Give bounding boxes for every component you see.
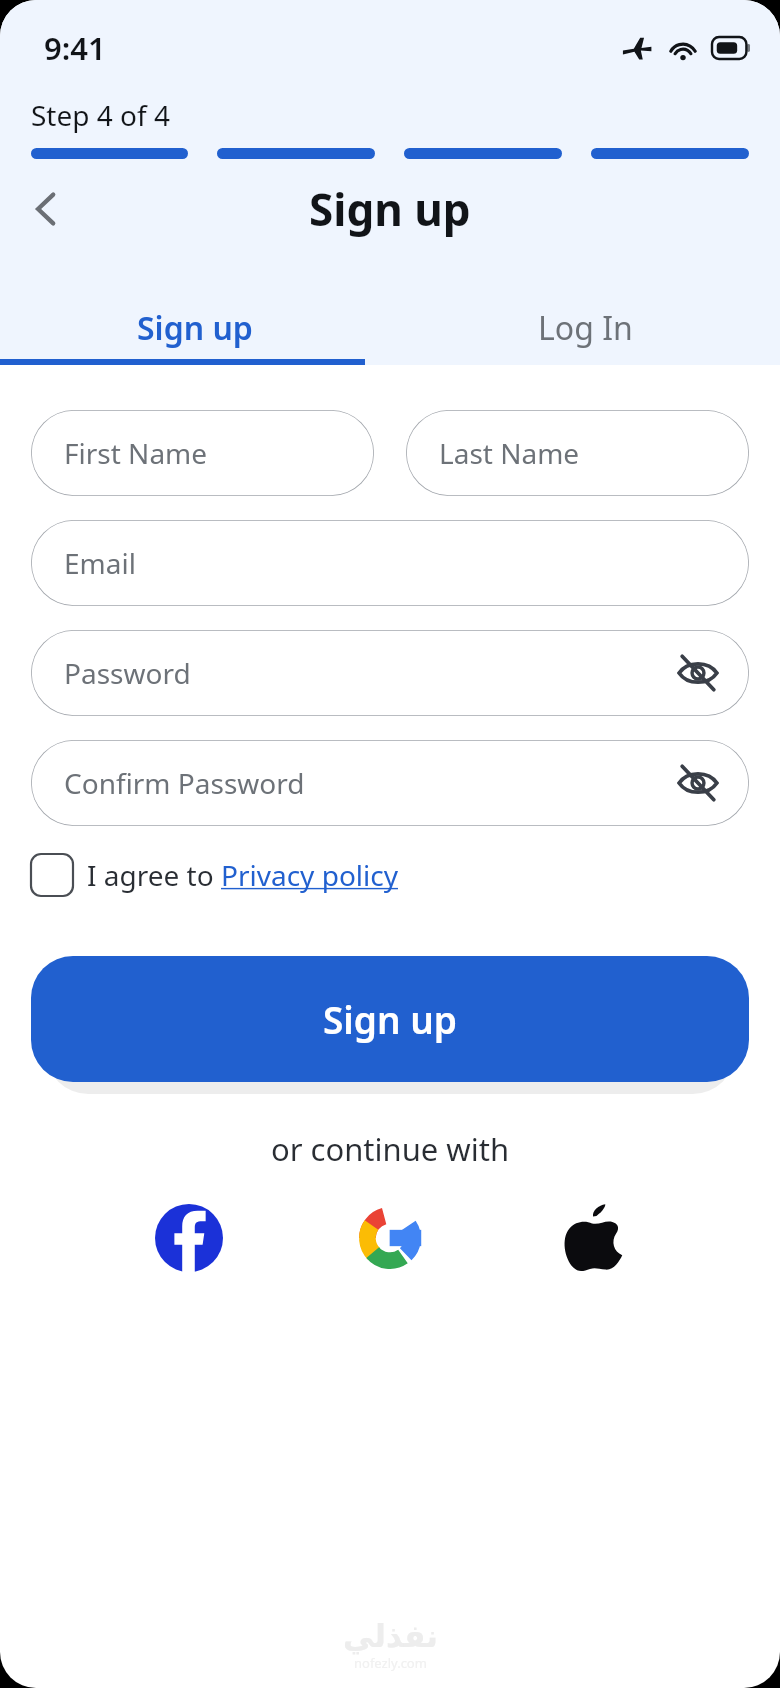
staticText: Last Name — [439, 434, 580, 472]
staticText: Sign up — [309, 179, 471, 239]
button[interactable]: Back — [16, 179, 76, 239]
button[interactable]: Show password — [669, 644, 727, 702]
button[interactable]: Last Name — [406, 410, 749, 496]
staticText: Log In — [538, 306, 633, 350]
button[interactable]: Sign up — [0, 291, 390, 365]
staticText: First Name — [64, 434, 208, 472]
staticText: Sign up — [323, 994, 457, 1044]
button[interactable]: First Name — [31, 410, 374, 496]
staticText: 9:41 — [44, 27, 106, 69]
staticText: Step 4 of 4 — [31, 96, 170, 134]
staticText: Password — [64, 654, 191, 692]
button[interactable]: Email — [31, 520, 749, 606]
staticText: Sign up — [137, 306, 253, 350]
staticText: I agree to — [87, 856, 221, 894]
button[interactable]: Log In — [390, 291, 780, 365]
button[interactable]: Show password — [669, 754, 727, 812]
button[interactable]: Sign up — [31, 956, 749, 1082]
button[interactable]: Confirm Password — [31, 740, 749, 826]
button[interactable]: I agree to — [31, 850, 398, 900]
staticText: نفذلي — [343, 1618, 438, 1654]
button[interactable]: Privacy policy — [221, 856, 398, 894]
button[interactable]: Continue with Google — [346, 1194, 434, 1282]
staticText: Email — [64, 544, 136, 582]
button[interactable]: Continue with Apple — [548, 1194, 636, 1282]
button[interactable]: Password — [31, 630, 749, 716]
staticText: or continue with — [31, 1128, 749, 1170]
button[interactable]: Continue with Facebook — [145, 1194, 233, 1282]
staticText: nofezly.com — [354, 1654, 427, 1672]
staticText: Confirm Password — [64, 764, 305, 802]
